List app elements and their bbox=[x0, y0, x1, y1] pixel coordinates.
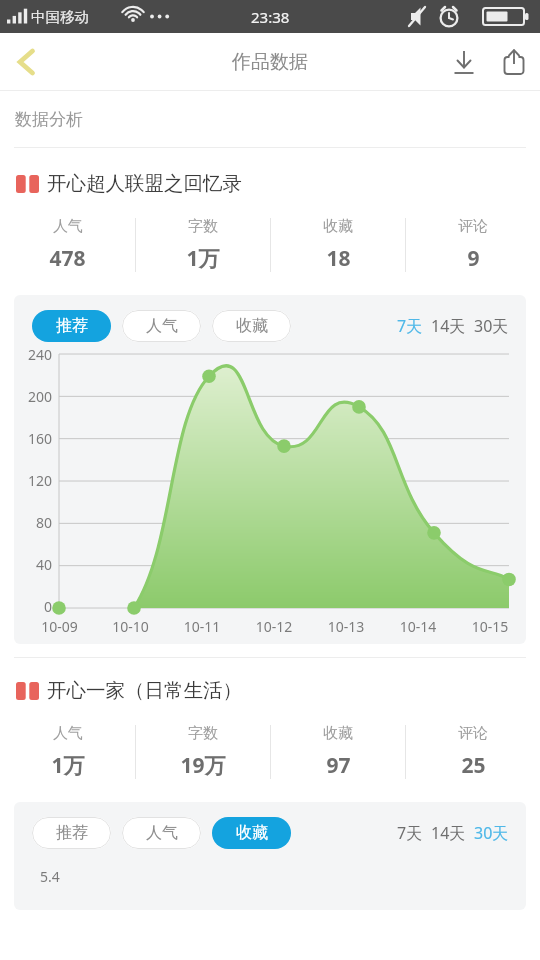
button[interactable]: 人气 bbox=[0, 217, 135, 273]
staticText: 25 bbox=[461, 751, 486, 780]
staticText: 人气 bbox=[146, 316, 178, 336]
staticText: 1万 bbox=[51, 751, 85, 780]
staticText: 开心超人联盟之回忆录 bbox=[47, 171, 242, 196]
staticText: 开心一家（日常生活） bbox=[47, 678, 242, 703]
staticText: 10-14 bbox=[382, 617, 454, 636]
button[interactable]: 收藏 bbox=[271, 217, 405, 273]
staticText: 推荐 bbox=[56, 823, 88, 843]
staticText: 5.4 bbox=[40, 867, 60, 886]
button[interactable]: Share bbox=[488, 36, 540, 88]
button[interactable]: 7天 bbox=[397, 315, 423, 337]
staticText: 40 bbox=[14, 555, 52, 574]
staticText: 23:38 bbox=[251, 7, 290, 27]
staticText: 14天 bbox=[431, 822, 466, 844]
button[interactable]: 14天 bbox=[431, 822, 466, 844]
button[interactable]: 人气 bbox=[0, 724, 135, 780]
staticText: 10-11 bbox=[166, 617, 238, 636]
button[interactable]: 评论 bbox=[406, 724, 540, 780]
button[interactable]: 收藏 bbox=[271, 724, 405, 780]
button[interactable]: 推荐 bbox=[32, 310, 111, 342]
staticText: 评论 bbox=[458, 217, 488, 236]
staticText: 收藏 bbox=[236, 316, 268, 336]
staticText: 240 bbox=[14, 345, 52, 364]
staticText: 18 bbox=[326, 244, 351, 273]
button[interactable]: 开心超人联盟之回忆录 bbox=[16, 171, 540, 196]
button[interactable]: 7天 bbox=[397, 822, 423, 844]
staticText: 收藏 bbox=[323, 724, 353, 743]
staticText: 200 bbox=[14, 387, 52, 406]
staticText: 7天 bbox=[397, 315, 423, 337]
staticText: 收藏 bbox=[323, 217, 353, 236]
staticText: 10-09 bbox=[24, 617, 95, 636]
staticText: 10-13 bbox=[310, 617, 382, 636]
button[interactable]: 收藏 bbox=[212, 817, 291, 849]
staticText: 1万 bbox=[186, 244, 220, 273]
button[interactable]: Download bbox=[440, 38, 488, 86]
staticText: 作品数据 bbox=[232, 50, 308, 74]
staticText: 10-10 bbox=[95, 617, 166, 636]
staticText: 97 bbox=[326, 751, 351, 780]
button[interactable]: 收藏 bbox=[212, 310, 291, 342]
button[interactable]: 评论 bbox=[406, 217, 540, 273]
staticText: 7天 bbox=[397, 822, 423, 844]
staticText: 120 bbox=[14, 471, 52, 490]
button[interactable]: 推荐 bbox=[32, 817, 111, 849]
staticText: 评论 bbox=[458, 724, 488, 743]
staticText: 478 bbox=[49, 244, 86, 273]
button[interactable]: 人气 bbox=[122, 817, 201, 849]
button[interactable]: 字数 bbox=[136, 724, 270, 780]
staticText: 字数 bbox=[188, 217, 218, 236]
staticText: 10-12 bbox=[238, 617, 310, 636]
staticText: 30天 bbox=[474, 315, 509, 337]
staticText: 10-15 bbox=[454, 617, 526, 636]
staticText: 19万 bbox=[180, 751, 226, 780]
button[interactable]: 开心一家（日常生活） bbox=[16, 678, 540, 703]
staticText: 人气 bbox=[53, 217, 83, 236]
staticText: 字数 bbox=[188, 724, 218, 743]
button[interactable]: 30天 bbox=[474, 315, 509, 337]
button[interactable]: Back bbox=[0, 36, 52, 88]
staticText: 中国移动 bbox=[31, 8, 89, 26]
staticText: 人气 bbox=[146, 823, 178, 843]
staticText: 160 bbox=[14, 429, 52, 448]
button[interactable]: 14天 bbox=[431, 315, 466, 337]
staticText: 人气 bbox=[53, 724, 83, 743]
button[interactable]: 30天 bbox=[474, 822, 509, 844]
button[interactable]: 字数 bbox=[136, 217, 270, 273]
staticText: 收藏 bbox=[236, 823, 268, 843]
staticText: 80 bbox=[14, 513, 52, 532]
staticText: 30天 bbox=[474, 822, 509, 844]
button[interactable]: 人气 bbox=[122, 310, 201, 342]
staticText: 9 bbox=[467, 244, 480, 273]
staticText: 推荐 bbox=[56, 316, 88, 336]
staticText: 数据分析 bbox=[15, 109, 83, 130]
staticText: 14天 bbox=[431, 315, 466, 337]
staticText: 0 bbox=[14, 597, 52, 615]
